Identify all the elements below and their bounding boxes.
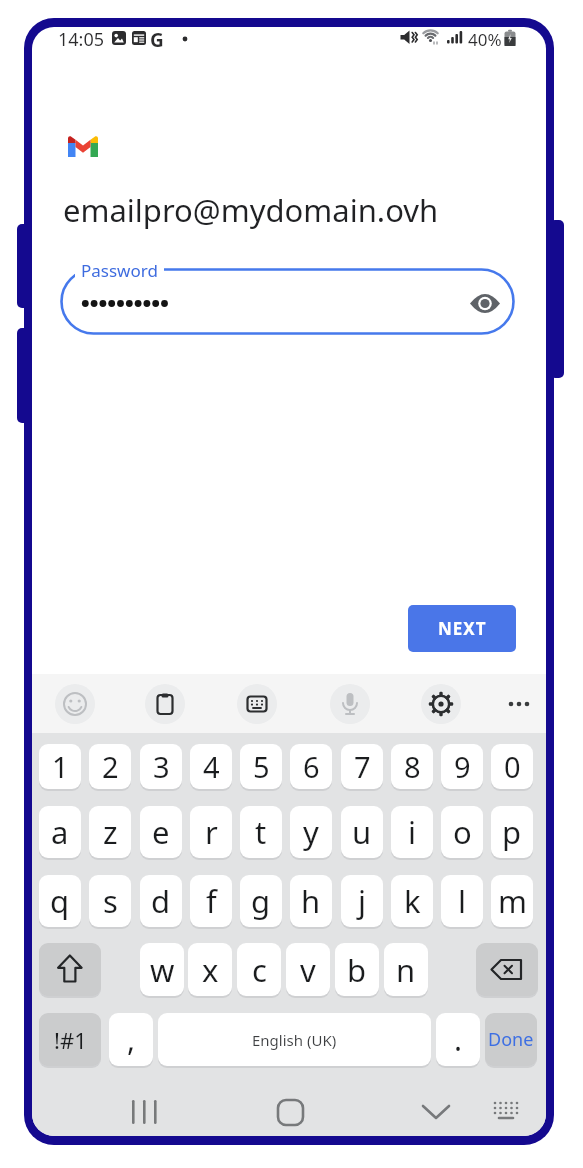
staticText: r — [205, 811, 218, 853]
button[interactable]: n — [384, 943, 428, 996]
button[interactable]: 6 — [290, 744, 332, 789]
staticText: 1 — [52, 747, 69, 786]
button[interactable] — [266, 1093, 314, 1136]
staticText: Password — [81, 259, 158, 282]
button[interactable]: o — [441, 806, 483, 858]
staticText: emailpro@mydomain.ovh — [63, 189, 439, 231]
staticText: 4 — [203, 747, 220, 786]
button[interactable] — [330, 684, 370, 724]
button[interactable] — [120, 1093, 168, 1136]
staticText: 9 — [454, 747, 471, 786]
button[interactable]: b — [335, 943, 379, 996]
staticText: d — [151, 880, 171, 922]
staticText: !#1 — [54, 1025, 87, 1055]
staticText: b — [347, 949, 367, 991]
button[interactable]: NEXT — [408, 605, 516, 652]
button[interactable]: r — [190, 806, 232, 858]
button[interactable]: , — [109, 1013, 153, 1066]
staticText: 3 — [153, 747, 170, 786]
button[interactable] — [145, 684, 185, 724]
staticText: u — [352, 811, 372, 853]
button[interactable] — [499, 684, 539, 724]
button[interactable] — [39, 943, 101, 996]
staticText: 2 — [102, 747, 119, 786]
button[interactable]: u — [341, 806, 383, 858]
staticText: 7 — [354, 747, 371, 786]
staticText: g — [251, 880, 271, 922]
button[interactable]: 1 — [39, 744, 81, 789]
staticText: 5 — [253, 747, 270, 786]
button[interactable]: 8 — [391, 744, 433, 789]
button[interactable]: !#1 — [39, 1013, 101, 1066]
staticText: z — [103, 811, 118, 853]
staticText: NEXT — [438, 617, 487, 640]
staticText: n — [396, 949, 416, 991]
button[interactable] — [488, 1093, 528, 1136]
staticText: j — [358, 880, 366, 922]
button[interactable] — [476, 943, 538, 996]
button[interactable]: l — [441, 875, 483, 927]
button[interactable] — [55, 684, 95, 724]
button[interactable]: x — [188, 943, 232, 996]
staticText: G — [150, 27, 164, 53]
staticText: x — [202, 949, 219, 991]
button[interactable]: t — [240, 806, 282, 858]
button[interactable]: s — [89, 875, 131, 927]
button[interactable]: j — [341, 875, 383, 927]
button[interactable] — [60, 268, 515, 335]
button[interactable]: 4 — [190, 744, 232, 789]
button[interactable] — [412, 1093, 460, 1136]
staticText: k — [404, 880, 421, 922]
staticText: e — [152, 811, 170, 853]
button[interactable]: v — [286, 943, 330, 996]
button[interactable] — [470, 294, 500, 313]
staticText: Done — [488, 1027, 534, 1052]
button[interactable]: 9 — [441, 744, 483, 789]
button[interactable]: 0 — [491, 744, 533, 789]
staticText: 8 — [404, 747, 421, 786]
staticText: 14:05 — [58, 27, 105, 52]
button[interactable]: d — [140, 875, 182, 927]
staticText: o — [453, 811, 472, 853]
staticText: h — [301, 880, 321, 922]
staticText: q — [50, 880, 70, 922]
button[interactable]: z — [89, 806, 131, 858]
staticText: , — [127, 1019, 136, 1060]
button[interactable]: m — [491, 875, 533, 927]
button[interactable]: e — [140, 806, 182, 858]
staticText: m — [498, 880, 527, 922]
staticText: c — [252, 949, 267, 991]
button[interactable]: h — [290, 875, 332, 927]
staticText: a — [51, 811, 69, 853]
button[interactable]: f — [190, 875, 232, 927]
button[interactable]: 2 — [89, 744, 131, 789]
button[interactable]: q — [39, 875, 81, 927]
button[interactable]: . — [436, 1013, 480, 1066]
button[interactable]: English (UK) — [158, 1013, 431, 1066]
button[interactable]: a — [39, 806, 81, 858]
button[interactable]: 3 — [140, 744, 182, 789]
staticText: English (UK) — [252, 1030, 337, 1050]
staticText: s — [103, 880, 118, 922]
button[interactable] — [237, 684, 277, 724]
button[interactable] — [421, 684, 461, 724]
button[interactable]: 7 — [341, 744, 383, 789]
button[interactable]: p — [491, 806, 533, 858]
staticText: i — [408, 811, 416, 853]
button[interactable]: 5 — [240, 744, 282, 789]
staticText: p — [502, 811, 522, 853]
staticText: 6 — [303, 747, 320, 786]
button[interactable]: i — [391, 806, 433, 858]
staticText: w — [150, 949, 175, 991]
button[interactable]: w — [140, 943, 184, 996]
button[interactable]: Done — [485, 1013, 537, 1066]
staticText: 0 — [504, 747, 521, 786]
button[interactable]: k — [391, 875, 433, 927]
button[interactable]: g — [240, 875, 282, 927]
staticText: v — [300, 949, 316, 991]
staticText: y — [303, 811, 319, 853]
button[interactable]: y — [290, 806, 332, 858]
button[interactable]: c — [237, 943, 281, 996]
staticText: 40% — [468, 28, 502, 51]
staticText: . — [454, 1019, 463, 1060]
